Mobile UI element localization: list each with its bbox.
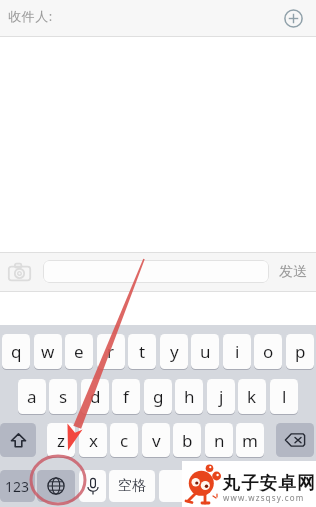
staticText: u [200,340,211,363]
staticText: x [89,429,98,452]
button[interactable] [43,260,269,283]
button[interactable]: e [65,334,93,369]
staticText: o [263,340,274,363]
staticText: （ [175,477,190,496]
staticText: n [214,429,225,452]
staticText: y [170,340,179,363]
staticText: z [57,429,65,452]
staticText: h [184,385,195,408]
staticText: www.wzsqsy.com [223,492,305,503]
button[interactable]: f [112,379,140,414]
button[interactable]: j [207,379,235,414]
staticText: b [182,429,193,452]
button[interactable]: y [160,334,188,369]
staticText: d [90,385,101,408]
button[interactable]: Voice input [79,470,106,502]
staticText: s [59,385,68,408]
staticText: r [107,340,115,363]
staticText: m [242,429,258,452]
button[interactable]: a [18,379,46,414]
button[interactable]: v [142,423,170,457]
button[interactable]: d [81,379,109,414]
button[interactable]: u [191,334,219,369]
button[interactable]: Camera [8,263,31,281]
staticText: 发送 [279,263,307,281]
button[interactable]: Add recipient [284,9,303,28]
button[interactable]: （ [159,470,205,502]
button[interactable]: t [128,334,156,369]
staticText: j [219,385,224,408]
staticText: t [139,340,146,363]
button[interactable]: 123 [0,470,35,502]
button[interactable]: w [34,334,62,369]
button[interactable]: p [286,334,314,369]
button[interactable]: 空格 [109,470,155,502]
button[interactable]: Shift [0,423,36,457]
button[interactable]: b [173,423,201,457]
button[interactable]: s [49,379,77,414]
staticText: k [247,385,257,408]
button[interactable]: c [110,423,138,457]
button[interactable]: r [97,334,125,369]
button[interactable]: m [236,423,264,457]
staticText: 空格 [118,477,146,495]
button[interactable]: Backspace [276,423,314,457]
button[interactable] [257,470,314,502]
button[interactable]: i [223,334,251,369]
button[interactable] [208,470,254,502]
staticText: v [152,429,161,452]
staticText: f [123,385,129,408]
staticText: p [295,340,306,363]
button[interactable]: l [270,379,298,414]
staticText: 丸子安卓网 [222,472,315,494]
staticText: c [120,429,129,452]
button[interactable]: Switch keyboard language [37,470,75,502]
staticText: l [282,385,287,408]
button[interactable]: h [175,379,203,414]
staticText: e [74,340,84,363]
staticText: g [153,385,164,408]
button[interactable]: x [79,423,107,457]
button[interactable]: q [2,334,30,369]
button[interactable]: g [144,379,172,414]
staticText: i [235,340,240,363]
button[interactable]: n [205,423,233,457]
staticText: a [27,385,37,408]
staticText: 123 [5,477,30,496]
staticText: w [41,340,55,363]
button[interactable]: 发送 [276,260,310,283]
staticText: q [11,340,22,363]
button[interactable]: o [254,334,282,369]
button[interactable]: k [238,379,266,414]
button[interactable]: z [47,423,75,457]
staticText: 收件人: [8,7,53,25]
